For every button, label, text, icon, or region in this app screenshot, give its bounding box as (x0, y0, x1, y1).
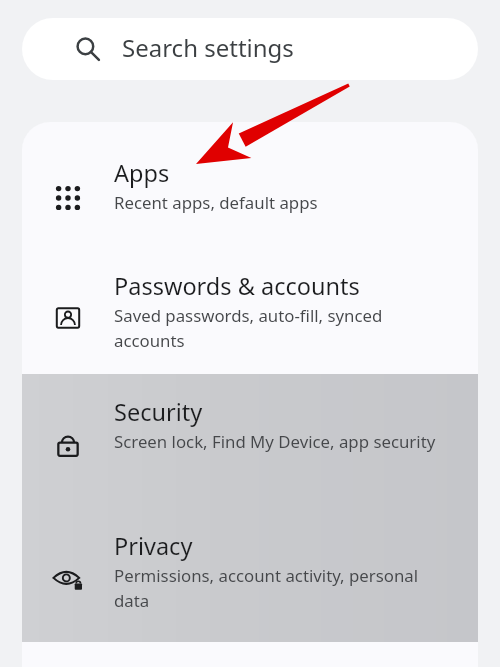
staticText: Screen lock, Find My Device, app securit… (114, 428, 436, 453)
staticText: Search settings (122, 35, 294, 63)
staticText: Passwords & accounts (114, 273, 360, 301)
button[interactable]: Apps (22, 122, 478, 252)
staticText: Saved passwords, auto-fill, synced accou… (114, 302, 452, 352)
staticText: Security (114, 399, 203, 427)
staticText: Recent apps, default apps (114, 189, 318, 214)
staticText: Privacy (114, 533, 193, 561)
button[interactable]: Search (22, 18, 478, 80)
other: Search (75, 36, 101, 62)
button[interactable]: Privacy (22, 508, 478, 642)
staticText: Apps (114, 160, 170, 188)
button[interactable]: Security (22, 374, 478, 508)
button[interactable]: Passwords & accounts (22, 252, 478, 374)
staticText: Permissions, account activity, personal … (114, 562, 452, 612)
